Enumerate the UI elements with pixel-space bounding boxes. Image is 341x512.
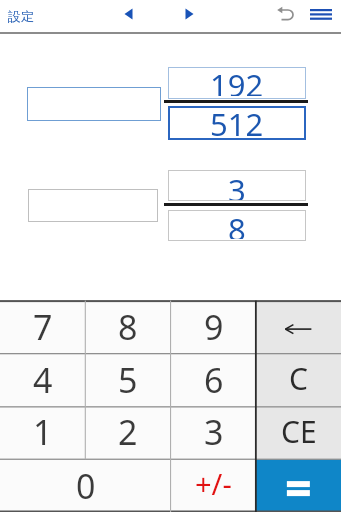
button[interactable]: 1 [0,407,85,459]
staticText: 2 [118,409,138,455]
button[interactable] [27,87,161,121]
button[interactable]: 8 [85,301,170,354]
staticText: 512 [210,103,264,137]
button[interactable]: CE [256,407,341,459]
staticText: CE [281,411,317,452]
staticText: 設定 [8,8,34,24]
button[interactable]: 3 [171,407,256,459]
staticText: 8 [228,208,246,239]
staticText: 1 [33,409,53,455]
button[interactable]: 192 [168,67,306,99]
button[interactable]: 4 [0,354,85,407]
button[interactable]: +/- [171,459,256,512]
button[interactable]: 5 [85,354,170,407]
staticText: 3 [228,169,246,200]
staticText: 7 [33,304,53,350]
button[interactable] [173,0,206,30]
staticText: 9 [204,304,224,350]
button[interactable] [112,0,145,30]
button[interactable] [256,301,341,354]
button[interactable] [305,0,337,30]
button[interactable]: C [256,354,341,407]
staticText: 6 [204,357,224,403]
button[interactable]: 3 [168,170,306,201]
button[interactable]: 6 [171,354,256,407]
button[interactable]: 9 [171,301,256,354]
staticText: 3 [204,409,224,455]
button[interactable] [28,189,158,222]
button[interactable] [256,459,341,512]
staticText: C [289,358,308,399]
staticText: 8 [118,304,138,350]
button[interactable]: 512 [168,106,306,140]
staticText: 4 [33,357,53,403]
staticText: 5 [118,357,138,403]
button[interactable]: 2 [85,407,170,459]
staticText: 192 [210,64,264,96]
staticText: 0 [76,463,96,509]
staticText: +/- [195,464,232,503]
button[interactable] [270,0,300,30]
button[interactable]: 設定 [4,2,54,30]
button[interactable]: 7 [0,301,85,354]
button[interactable]: 8 [168,210,306,241]
button[interactable]: 0 [0,459,171,512]
